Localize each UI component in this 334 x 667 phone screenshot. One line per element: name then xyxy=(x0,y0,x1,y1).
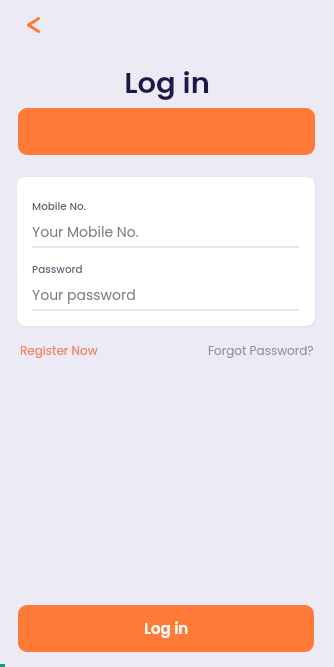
staticText: Your password xyxy=(32,285,136,305)
staticText: Your Mobile No. xyxy=(32,222,139,242)
button[interactable]: Register Now xyxy=(14,336,104,365)
button[interactable]: Forgot Password? xyxy=(202,336,320,365)
button[interactable]: Mobile No. xyxy=(32,194,299,246)
staticText: Log in xyxy=(0,63,334,104)
button[interactable]: Password xyxy=(32,257,299,309)
staticText: Password xyxy=(32,262,83,277)
staticText: Log in xyxy=(144,618,189,639)
button[interactable]: Back xyxy=(19,11,47,39)
staticText: Forgot Password? xyxy=(208,342,314,359)
staticText: Register Now xyxy=(20,342,98,359)
staticText: Mobile No. xyxy=(32,199,87,214)
button[interactable]: Log in xyxy=(18,605,314,652)
button[interactable]: Promo banner xyxy=(18,108,315,155)
